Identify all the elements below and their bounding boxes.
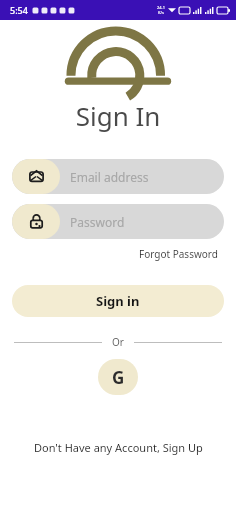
staticText: G: [112, 366, 125, 389]
staticText: 5:54: [10, 4, 28, 16]
button[interactable]: Forgot Password: [137, 245, 220, 263]
button[interactable]: Password: [12, 204, 224, 239]
button[interactable]: Email: [12, 159, 224, 194]
staticText: Email address: [70, 169, 149, 185]
other: Email: [29, 169, 44, 184]
staticText: Forgot Password: [139, 247, 218, 261]
staticText: Password: [70, 214, 125, 230]
button[interactable]: Sign in with Google: [98, 359, 138, 395]
staticText: Sign In: [0, 98, 236, 133]
staticText: Sign in: [96, 292, 140, 310]
button[interactable]: Don't Have any Account, Sign Up: [30, 437, 207, 458]
other: Password: [29, 214, 44, 229]
button[interactable]: Sign in: [12, 285, 224, 317]
staticText: Don't Have any Account, Sign Up: [34, 440, 203, 455]
staticText: 24.1 K/s: [157, 5, 165, 15]
staticText: Or: [112, 335, 124, 349]
